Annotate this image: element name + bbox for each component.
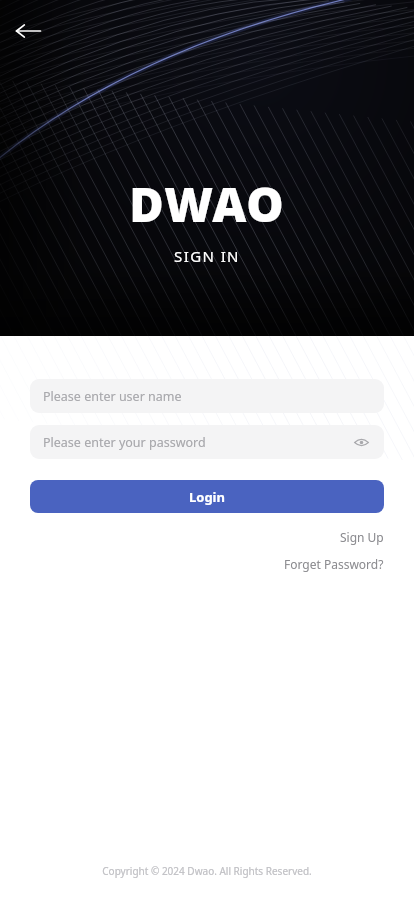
- button[interactable]: Please enter user name: [30, 379, 384, 413]
- button[interactable]: Please enter your password: [30, 425, 384, 459]
- button[interactable]: Login: [30, 480, 384, 513]
- staticText: SIGN IN: [0, 246, 414, 266]
- button[interactable]: Show password: [348, 429, 374, 455]
- staticText: Please enter user name: [43, 388, 182, 405]
- button[interactable]: Forget Password?: [284, 554, 384, 574]
- button[interactable]: Back: [6, 9, 50, 53]
- staticText: DWAO: [0, 172, 414, 236]
- staticText: Login: [189, 488, 225, 506]
- staticText: Please enter your password: [43, 434, 206, 451]
- staticText: Forget Password?: [284, 556, 384, 572]
- button[interactable]: Sign Up: [340, 527, 384, 547]
- staticText: Sign Up: [340, 529, 384, 545]
- staticText: Copyright © 2024 Dwao. All Rights Reserv…: [0, 864, 414, 878]
